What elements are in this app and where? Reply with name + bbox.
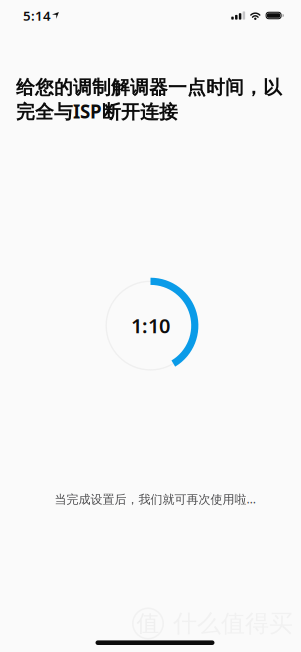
staticText: 当完成设置后，我们就可再次使用啦… <box>54 491 255 507</box>
staticText: 值 <box>136 610 159 637</box>
staticText: 1:10 <box>131 312 170 339</box>
staticText: 给您的调制解调器一点时间，以 完全与ISP断开连接 <box>16 76 282 124</box>
staticText: 什么值得买 <box>173 609 293 638</box>
staticText: 5:14 <box>23 7 51 24</box>
